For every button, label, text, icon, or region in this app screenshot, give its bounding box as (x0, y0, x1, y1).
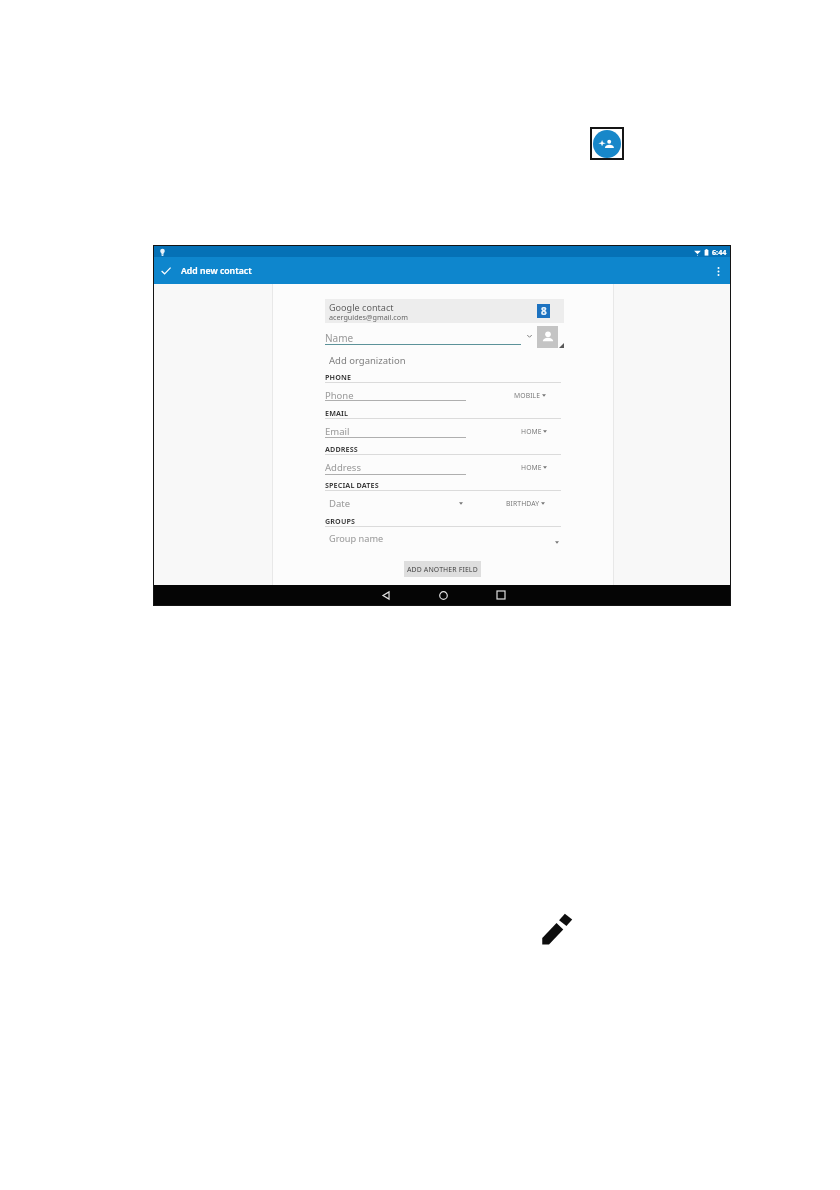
button[interactable]: ADD ANOTHER FIELD (404, 561, 481, 577)
button[interactable]: HOME (521, 463, 547, 472)
staticText: ADD ANOTHER FIELD (407, 565, 478, 574)
staticText: Name (325, 331, 354, 345)
staticText: Email (325, 425, 350, 438)
button[interactable]: Edit (537, 909, 577, 949)
button[interactable]: Add contact (592, 129, 622, 158)
staticText: MOBILE (514, 391, 541, 400)
staticText: 8 (541, 304, 547, 318)
button[interactable]: Address (325, 460, 466, 476)
button[interactable]: Group name (325, 531, 561, 545)
button[interactable]: Add photo (537, 326, 558, 348)
button[interactable]: More options (710, 263, 726, 279)
button[interactable]: MOBILE (514, 391, 546, 400)
button[interactable]: Add organization (329, 354, 406, 367)
staticText: Address (325, 461, 361, 474)
button[interactable]: Phone (325, 388, 466, 402)
staticText: GROUPS (325, 516, 356, 526)
staticText: PHONE (325, 372, 352, 382)
staticText: HOME (521, 463, 542, 472)
staticText: Add new contact (181, 265, 252, 277)
button[interactable]: Google contact (325, 299, 564, 323)
button[interactable]: Date (325, 496, 561, 510)
button[interactable]: Email (325, 424, 466, 439)
button[interactable]: Back (378, 587, 394, 603)
button[interactable]: Done (158, 263, 174, 279)
staticText: Group name (329, 532, 384, 545)
staticText: BIRTHDAY (506, 499, 540, 508)
staticText: HOME (521, 427, 542, 436)
button[interactable]: HOME (521, 427, 547, 436)
staticText: ADDRESS (325, 444, 358, 454)
staticText: EMAIL (325, 408, 349, 418)
staticText: Google contact (329, 301, 394, 313)
button[interactable]: Home (435, 587, 451, 603)
staticText: acerguides@gmail.com (329, 312, 408, 322)
staticText: Date (329, 497, 351, 510)
staticText: Phone (325, 389, 354, 402)
button[interactable]: Recents (493, 587, 509, 603)
staticText: SPECIAL DATES (325, 480, 379, 490)
button[interactable]: BIRTHDAY (506, 499, 545, 508)
staticText: 6:44 (712, 247, 727, 257)
